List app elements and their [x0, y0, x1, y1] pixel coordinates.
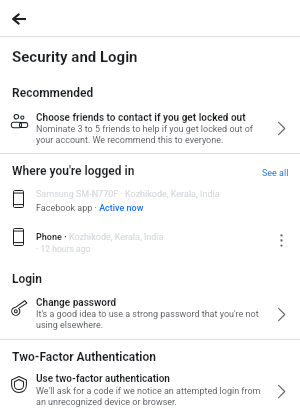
staticText: Nominate 3 to 5 friends to help if you g…: [36, 124, 260, 145]
staticText: Samsung SM-N770F · Kozhikode, Kerala, In…: [36, 189, 220, 200]
button[interactable]: See all: [258, 163, 292, 179]
staticText: Where you're logged in: [12, 164, 135, 178]
staticText: Use two-factor authentication: [36, 373, 170, 385]
staticText: Login: [12, 272, 43, 286]
staticText: · 12 hours ago: [36, 244, 91, 254]
staticText: Choose friends to contact if you get loc…: [36, 112, 246, 124]
staticText: It's a good idea to use a strong passwor…: [36, 309, 264, 330]
staticText: We'll ask for a code if we notice an att…: [36, 386, 264, 407]
staticText: Change password: [36, 297, 117, 309]
staticText: See all: [262, 168, 289, 179]
staticText: Facebook app · Active now: [36, 203, 144, 214]
button[interactable]: Back: [5, 5, 33, 33]
button[interactable]: [0, 186, 300, 216]
button[interactable]: [0, 291, 300, 333]
button[interactable]: More options: [272, 231, 290, 249]
staticText: Phone · Kozhikode, Kerala, India: [36, 232, 164, 243]
staticText: Security and Login: [12, 48, 138, 66]
staticText: Recommended: [12, 86, 94, 100]
button[interactable]: [0, 105, 300, 149]
staticText: Two-Factor Authentication: [12, 350, 156, 364]
button[interactable]: [0, 369, 300, 413]
button[interactable]: [0, 224, 300, 254]
